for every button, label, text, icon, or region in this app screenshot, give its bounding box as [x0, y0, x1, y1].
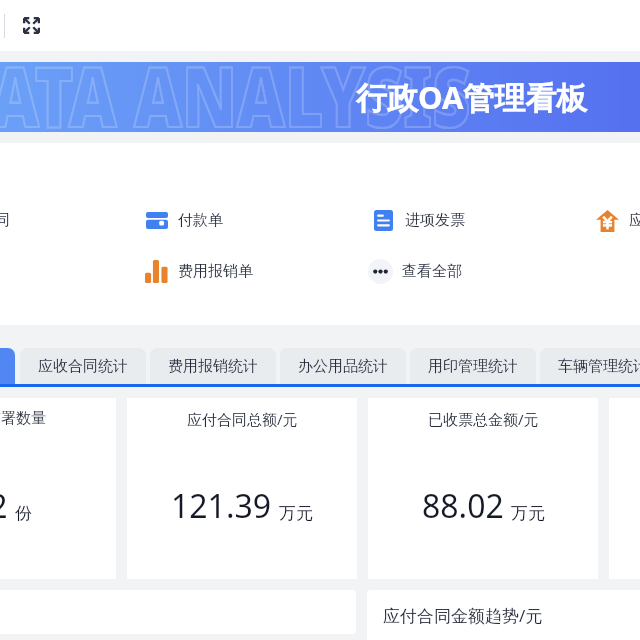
button[interactable]: 查看全部	[368, 259, 462, 284]
staticText: 查看全部	[402, 262, 462, 281]
button[interactable]: 办公用品统计	[280, 348, 406, 384]
staticText: 费用报销单	[178, 262, 253, 281]
staticText: 付款单	[178, 211, 223, 230]
staticText: 121.39	[171, 484, 272, 528]
button[interactable]: 合同签署数量	[0, 398, 116, 579]
staticText: 费用报销统计	[168, 357, 258, 376]
staticText: 合同签署数量	[0, 409, 46, 428]
staticText: 应付合同总额/元	[187, 409, 298, 429]
staticText: 办公用品统计	[298, 357, 388, 376]
button[interactable]: 车辆管理统计	[540, 348, 640, 384]
button[interactable]: 应收合同统计	[20, 348, 146, 384]
button[interactable]: 进项发票	[371, 208, 465, 233]
staticText: 应付账款	[629, 211, 640, 230]
staticText: 车辆管理统计	[558, 357, 640, 376]
staticText: 采购合同	[0, 211, 10, 230]
button[interactable]: 采购合同	[0, 208, 10, 233]
staticText: 行政OA管理看板	[356, 76, 588, 118]
button[interactable]: 应付合同金额趋势/元	[367, 590, 640, 640]
button[interactable]: 付款单	[144, 208, 223, 233]
button[interactable]: 用印管理统计	[410, 348, 536, 384]
staticText: 份	[15, 503, 32, 524]
staticText: 万元	[511, 503, 545, 524]
staticText: 应收合同统计	[38, 357, 128, 376]
button[interactable]: Fullscreen	[17, 11, 45, 39]
button[interactable]: 已收票总金额/元	[368, 398, 598, 579]
staticText: 万元	[279, 503, 313, 524]
button[interactable]: 费用报销统计	[150, 348, 276, 384]
staticText: 12	[0, 484, 8, 528]
staticText: 进项发票	[405, 211, 465, 230]
button[interactable]: 费用报销单	[144, 259, 253, 284]
staticText: 已收票总金额/元	[428, 409, 539, 429]
button[interactable]: 应付合同总额/元	[127, 398, 357, 579]
button[interactable]: 车辆管理统计	[0, 348, 15, 384]
staticText: 88.02	[422, 484, 504, 528]
staticText: DATA ANALYSIS	[0, 62, 471, 132]
button[interactable]: 应付账款	[595, 208, 640, 233]
staticText: 用印管理统计	[428, 357, 518, 376]
staticText: 应付合同金额趋势/元	[383, 604, 543, 627]
